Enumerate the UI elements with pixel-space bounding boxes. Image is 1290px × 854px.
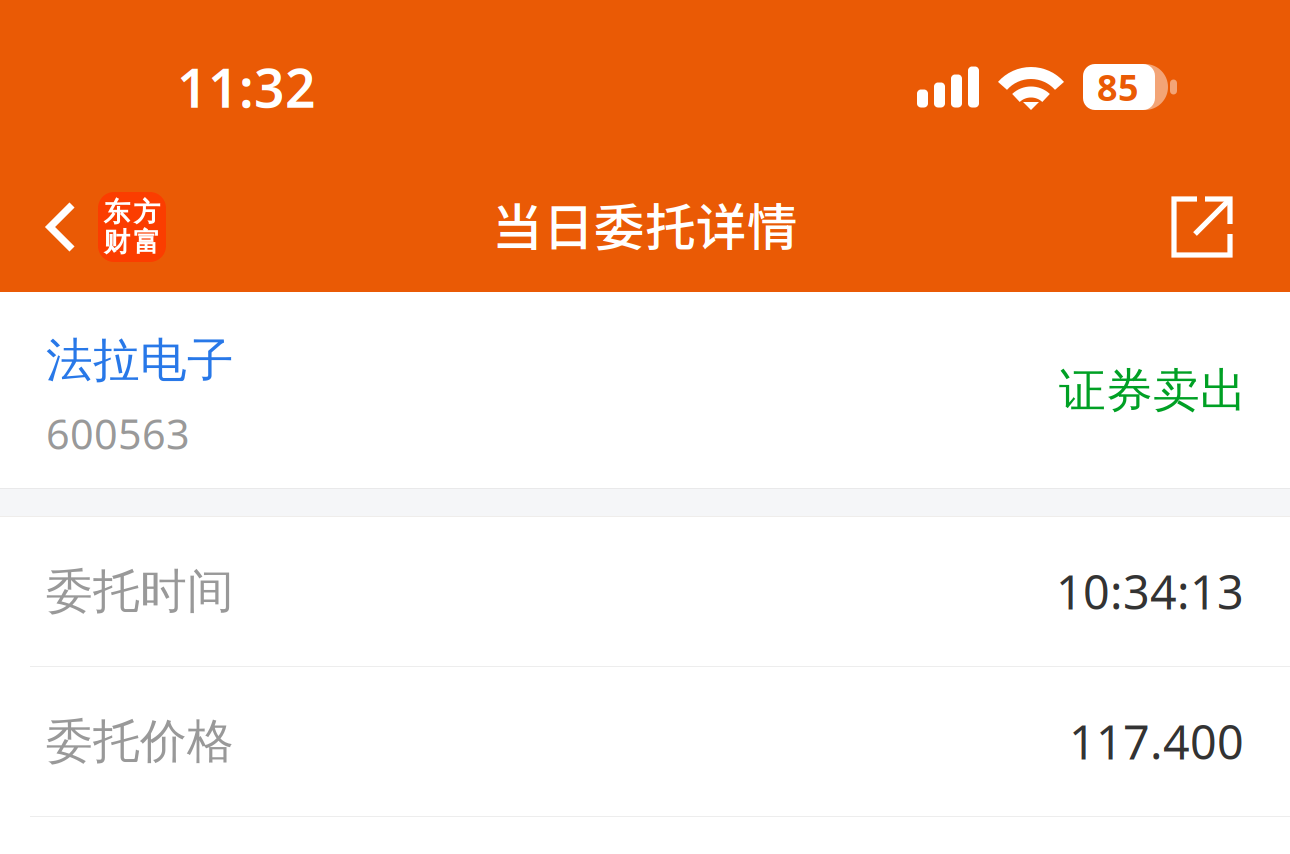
staticText: 方 bbox=[133, 196, 160, 228]
staticText: 财 bbox=[103, 226, 130, 258]
staticText: 委托时间 bbox=[46, 563, 234, 620]
staticText: 富 bbox=[133, 226, 160, 258]
staticText: 当日委托详情 bbox=[492, 187, 798, 261]
staticText: 117.400 bbox=[1069, 710, 1244, 772]
staticText: 委托价格 bbox=[46, 713, 234, 770]
staticText: 85 bbox=[1097, 63, 1139, 111]
staticText: 600563 bbox=[46, 406, 190, 461]
staticText: 证券卖出 bbox=[1059, 362, 1247, 419]
staticText: 法拉电子 bbox=[46, 332, 234, 389]
staticText: 10:34:13 bbox=[1056, 560, 1244, 622]
staticText: 11:32 bbox=[177, 52, 316, 122]
button[interactable]: 返回 bbox=[0, 170, 186, 292]
staticText: 东 bbox=[103, 196, 130, 228]
button[interactable]: 分享 bbox=[1151, 170, 1290, 292]
button[interactable]: 法拉电子 bbox=[0, 292, 1290, 488]
